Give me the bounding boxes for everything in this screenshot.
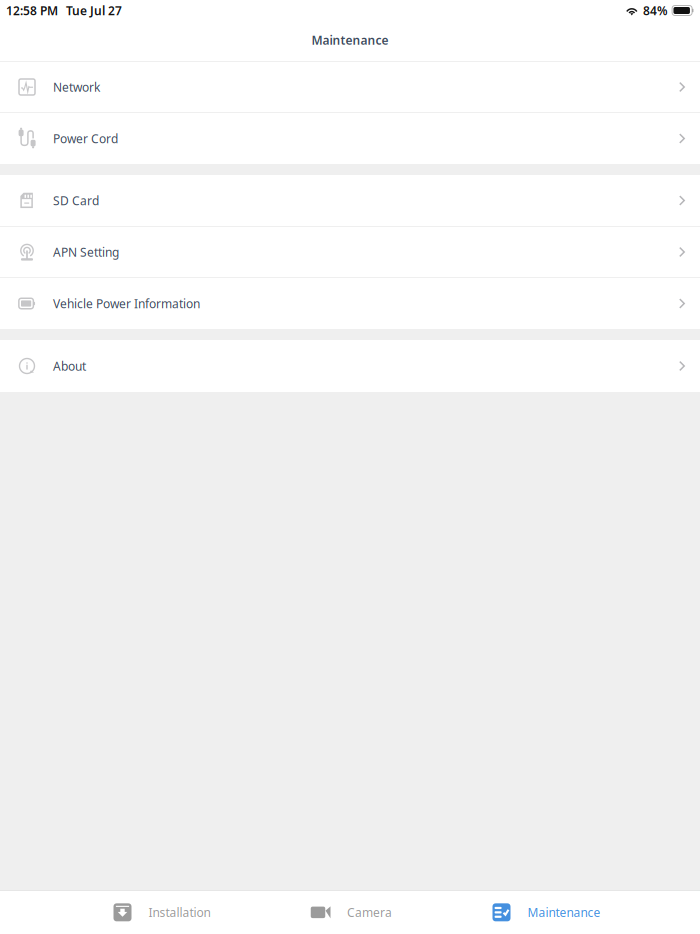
button[interactable]: About (0, 340, 700, 392)
button[interactable]: Network (0, 62, 700, 113)
staticText: 84% (643, 2, 668, 18)
staticText: APN Setting (53, 244, 119, 260)
staticText: Installation (148, 904, 210, 920)
staticText: Maintenance (527, 904, 600, 920)
staticText: 12:58 PM (6, 2, 58, 18)
staticText: SD Card (53, 192, 99, 208)
button[interactable]: Power Cord (0, 113, 700, 164)
button[interactable]: SD Card (0, 175, 700, 227)
staticText: About (53, 358, 86, 374)
staticText: Power Cord (53, 130, 118, 146)
staticText: Tue Jul 27 (66, 2, 122, 18)
staticText: Vehicle Power Information (53, 295, 200, 311)
staticText: Network (53, 79, 100, 95)
staticText: Maintenance (311, 32, 388, 48)
staticText: Camera (347, 904, 392, 920)
button[interactable]: Camera (310, 891, 392, 934)
button[interactable]: Installation (112, 891, 210, 934)
button[interactable]: APN Setting (0, 227, 700, 278)
button[interactable]: Vehicle Power Information (0, 278, 700, 329)
button[interactable]: Maintenance (491, 891, 600, 934)
